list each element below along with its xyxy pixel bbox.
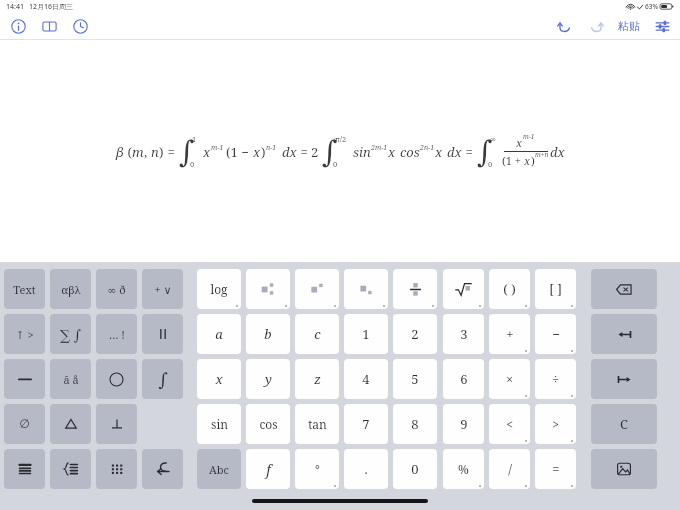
- button[interactable]: b: [246, 314, 290, 354]
- button[interactable]: 7: [344, 404, 388, 444]
- staticText: ∫: [322, 134, 338, 169]
- button[interactable]: −: [535, 314, 576, 354]
- button[interactable]: x: [197, 359, 241, 399]
- button[interactable]: Absolute value: [142, 314, 183, 354]
- button[interactable]: cos: [246, 404, 290, 444]
- button[interactable]: 粘贴: [616, 17, 642, 35]
- button[interactable]: °: [295, 449, 339, 489]
- button[interactable]: Undo: [554, 16, 574, 36]
- button[interactable]: =: [535, 449, 576, 489]
- button[interactable]: Fraction: [393, 269, 437, 309]
- button[interactable]: [ ]: [535, 269, 576, 309]
- button[interactable]: Reference: [39, 16, 59, 36]
- staticText: 粘贴: [618, 19, 640, 33]
- staticText: m+n: [535, 150, 549, 159]
- staticText: ×: [506, 371, 513, 387]
- staticText: ∫: [179, 134, 195, 169]
- button[interactable]: ×: [489, 359, 530, 399]
- button[interactable]: ∑ ∫: [50, 314, 91, 354]
- staticText: 7: [362, 415, 370, 433]
- button[interactable]: ↑ >: [4, 314, 45, 354]
- button[interactable]: ∅: [4, 404, 45, 444]
- button[interactable]: z: [295, 359, 339, 399]
- staticText: a: [215, 325, 223, 343]
- button[interactable]: αβλ: [50, 269, 91, 309]
- button[interactable]: %: [443, 449, 484, 489]
- staticText: 0: [333, 159, 338, 169]
- button[interactable]: … !: [96, 314, 137, 354]
- button[interactable]: New line: [142, 449, 183, 489]
- button[interactable]: 6: [443, 359, 484, 399]
- button[interactable]: 2: [393, 314, 437, 354]
- button[interactable]: Superscript and subscript: [246, 269, 290, 309]
- button[interactable]: Move cursor right: [591, 359, 657, 399]
- button[interactable]: <: [489, 404, 530, 444]
- button[interactable]: ∞ ð: [96, 269, 137, 309]
- staticText: −: [552, 325, 560, 343]
- staticText: f: [266, 460, 271, 479]
- staticText: 2m−1: [371, 143, 388, 153]
- staticText: dx: [447, 143, 462, 161]
- button[interactable]: /: [489, 449, 530, 489]
- button[interactable]: C: [591, 404, 657, 444]
- button[interactable]: Move cursor left: [591, 314, 657, 354]
- button[interactable]: Insert image: [591, 449, 657, 489]
- button[interactable]: Subscript: [344, 269, 388, 309]
- staticText: ă å: [63, 372, 79, 387]
- button[interactable]: 4: [344, 359, 388, 399]
- button[interactable]: Info: [8, 16, 28, 36]
- button[interactable]: ∫: [142, 359, 183, 399]
- button[interactable]: Cases: [50, 449, 91, 489]
- button[interactable]: >: [535, 404, 576, 444]
- button[interactable]: Alignment: [4, 449, 45, 489]
- button[interactable]: Circled symbol: [96, 359, 137, 399]
- staticText: m−1: [523, 132, 535, 141]
- button[interactable]: Text: [4, 269, 45, 309]
- staticText: ∅: [19, 417, 30, 431]
- button[interactable]: tan: [295, 404, 339, 444]
- button[interactable]: log: [197, 269, 241, 309]
- staticText: ,: [144, 143, 151, 161]
- button[interactable]: Matrix: [96, 449, 137, 489]
- button[interactable]: Redo: [586, 16, 606, 36]
- button[interactable]: ÷: [535, 359, 576, 399]
- button[interactable]: 1: [344, 314, 388, 354]
- button[interactable]: + ∨: [142, 269, 183, 309]
- button[interactable]: sin: [197, 404, 241, 444]
- staticText: Text: [13, 282, 36, 297]
- button[interactable]: ( ): [489, 269, 530, 309]
- button[interactable]: y: [246, 359, 290, 399]
- button[interactable]: History: [70, 16, 90, 36]
- button[interactable]: 3: [443, 314, 484, 354]
- button[interactable]: f: [246, 449, 290, 489]
- staticText: tan: [308, 416, 327, 432]
- staticText: >: [552, 416, 559, 432]
- staticText: 4: [362, 370, 370, 388]
- button[interactable]: Overline: [4, 359, 45, 399]
- button[interactable]: c: [295, 314, 339, 354]
- button[interactable]: 5: [393, 359, 437, 399]
- button[interactable]: Abc: [197, 449, 241, 489]
- button[interactable]: Triangle: [50, 404, 91, 444]
- staticText: x: [524, 153, 531, 168]
- staticText: dx: [550, 143, 565, 161]
- staticText: dx: [282, 143, 297, 161]
- button[interactable]: +: [489, 314, 530, 354]
- staticText: … !: [109, 327, 125, 342]
- button[interactable]: Backspace: [591, 269, 657, 309]
- button[interactable]: 8: [393, 404, 437, 444]
- button[interactable]: ă å: [50, 359, 91, 399]
- button[interactable]: .: [344, 449, 388, 489]
- button[interactable]: Square root: [443, 269, 484, 309]
- button[interactable]: 9: [443, 404, 484, 444]
- button[interactable]: Perpendicular: [96, 404, 137, 444]
- staticText: π/2: [335, 134, 347, 144]
- button[interactable]: a: [197, 314, 241, 354]
- button[interactable]: 0: [393, 449, 437, 489]
- button[interactable]: Superscript: [295, 269, 339, 309]
- staticText: 63%: [645, 2, 658, 11]
- staticText: sin: [353, 143, 371, 161]
- staticText: 0: [411, 460, 419, 478]
- button[interactable]: More options: [652, 16, 672, 36]
- staticText: (1 −: [226, 143, 253, 161]
